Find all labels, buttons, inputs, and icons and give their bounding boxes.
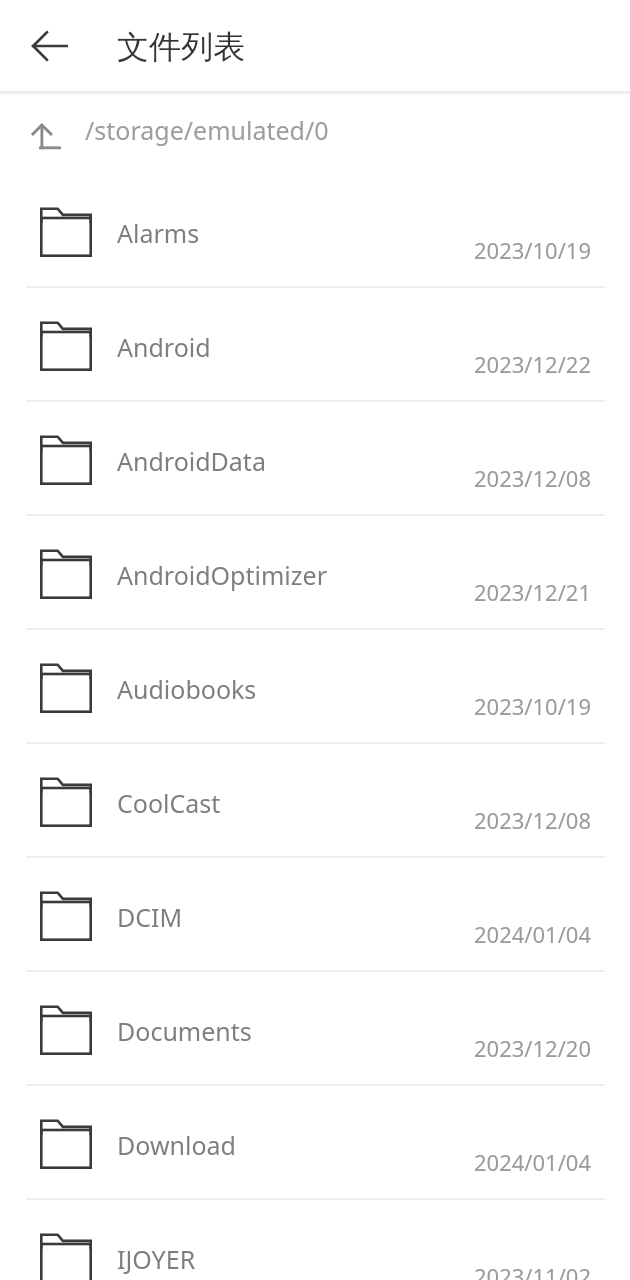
staticText: Android — [117, 330, 477, 364]
staticText: /storage/emulated/0 — [85, 113, 329, 147]
staticText: 2024/01/04 — [474, 919, 592, 949]
button[interactable]: IJOYER — [0, 1200, 630, 1280]
staticText: 2023/12/21 — [474, 577, 592, 607]
button[interactable]: Download — [0, 1086, 630, 1200]
staticText: AndroidData — [117, 444, 477, 478]
button[interactable]: CoolCast — [0, 744, 630, 858]
staticText: 2023/12/08 — [474, 463, 592, 493]
staticText: 2023/12/20 — [474, 1033, 592, 1063]
staticText: DCIM — [117, 900, 477, 934]
button[interactable]: AndroidOptimizer — [0, 516, 630, 630]
staticText: 2023/10/19 — [474, 691, 592, 721]
staticText: AndroidOptimizer — [117, 558, 477, 592]
button[interactable]: Audiobooks — [0, 630, 630, 744]
staticText: Download — [117, 1128, 477, 1162]
staticText: 文件列表 — [117, 27, 245, 67]
staticText: 2023/11/02 — [474, 1261, 592, 1280]
button[interactable]: DCIM — [0, 858, 630, 972]
staticText: 2023/12/22 — [474, 349, 592, 379]
staticText: 2024/01/04 — [474, 1147, 592, 1177]
staticText: Documents — [117, 1014, 477, 1048]
button[interactable]: /storage/emulated/0 — [0, 96, 630, 174]
staticText: IJOYER — [117, 1242, 477, 1276]
button[interactable]: Documents — [0, 972, 630, 1086]
staticText: Alarms — [117, 216, 477, 250]
button[interactable]: Android — [0, 288, 630, 402]
button[interactable]: AndroidData — [0, 402, 630, 516]
button[interactable]: Back — [13, 10, 85, 82]
staticText: 2023/12/08 — [474, 805, 592, 835]
button[interactable]: Alarms — [0, 174, 630, 288]
staticText: 2023/10/19 — [474, 235, 592, 265]
staticText: CoolCast — [117, 786, 477, 820]
staticText: Audiobooks — [117, 672, 477, 706]
